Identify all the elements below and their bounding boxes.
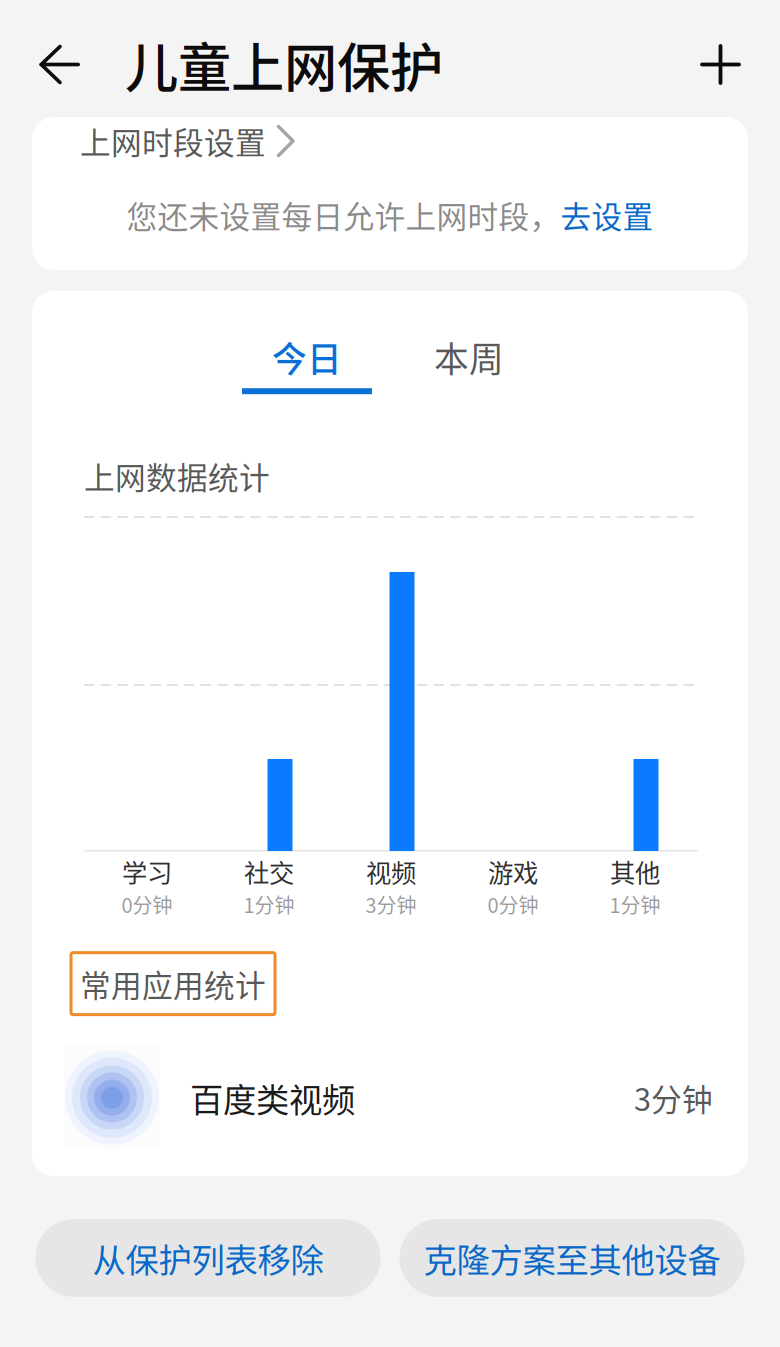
button[interactable]: 上网时段设置 <box>32 117 748 270</box>
button[interactable]: 从保护列表移除 <box>35 1219 380 1297</box>
button[interactable]: Add <box>660 12 780 117</box>
staticText: 0分钟 <box>487 890 538 919</box>
staticText: 本周 <box>434 332 504 382</box>
staticText: 今日 <box>272 332 342 382</box>
button[interactable]: 本周 <box>388 332 550 394</box>
staticText: 3分钟 <box>634 1075 713 1120</box>
staticText: 儿童上网保护 <box>125 26 443 103</box>
staticText: 上网时段设置 <box>80 119 266 163</box>
staticText: 视频 <box>366 853 416 890</box>
staticText: 1分钟 <box>609 890 660 919</box>
button[interactable]: Back <box>0 12 125 117</box>
staticText: 学习 <box>122 853 172 890</box>
staticText: 社交 <box>244 853 294 890</box>
button[interactable]: 今日 <box>226 332 388 394</box>
staticText: 您还未设置每日允许上网时段， <box>126 193 560 237</box>
staticText: 1分钟 <box>243 890 294 919</box>
button[interactable]: 克隆方案至其他设备 <box>399 1219 744 1297</box>
staticText: 游戏 <box>488 853 538 890</box>
staticText: 上网数据统计 <box>84 454 270 498</box>
staticText: 0分钟 <box>121 890 172 919</box>
staticText: 百度类视频 <box>190 1073 355 1122</box>
staticText: 其他 <box>610 853 660 890</box>
staticText: 从保护列表移除 <box>92 1234 323 1282</box>
staticText: 去设置 <box>560 193 653 237</box>
staticText: 克隆方案至其他设备 <box>423 1234 720 1282</box>
staticText: 3分钟 <box>365 890 416 919</box>
staticText: 常用应用统计 <box>80 961 266 1006</box>
